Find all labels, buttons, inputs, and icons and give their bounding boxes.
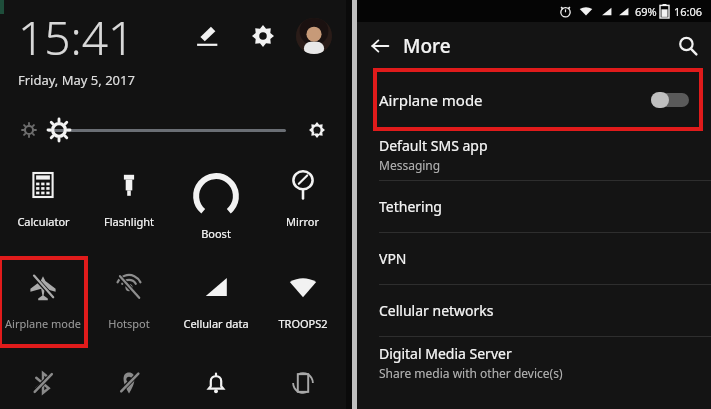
staticText: Airplane mode [379, 90, 483, 110]
button[interactable]: Cellular networks [357, 285, 711, 336]
staticText: More [403, 33, 451, 59]
staticText: Messaging [379, 157, 441, 173]
button[interactable]: Default SMS app [357, 129, 711, 180]
button[interactable]: Digital Media Server [357, 337, 711, 388]
staticText: Flashlight [104, 214, 154, 229]
staticText: Cellular networks [379, 301, 494, 320]
staticText: Share media with other device(s) [379, 365, 563, 381]
staticText: TROOPS2 [278, 316, 328, 331]
button[interactable]: Auto brightness [302, 115, 332, 145]
staticText: Airplane mode [5, 316, 81, 331]
staticText: 15:41 [18, 6, 135, 69]
staticText: Boost [201, 226, 231, 241]
staticText: Hotspot [108, 316, 150, 331]
staticText: 16:06 [674, 4, 703, 19]
staticText: Mirror [286, 214, 319, 229]
button[interactable]: Edit [190, 19, 224, 53]
staticText: Default SMS app [379, 136, 488, 155]
staticText: Cellular data [183, 316, 249, 331]
button[interactable]: Search [665, 23, 711, 69]
button[interactable]: Cellular data [172, 258, 259, 337]
staticText: A [314, 125, 320, 136]
button[interactable]: Calculator [0, 156, 86, 235]
button[interactable]: Boost [172, 156, 259, 247]
staticText: Digital Media Server [379, 344, 512, 363]
button[interactable]: Notifications [172, 358, 259, 408]
button[interactable]: Flashlight [86, 156, 172, 235]
button[interactable]: Bluetooth off [0, 358, 86, 408]
staticText: VPN [379, 249, 407, 268]
button[interactable]: VPN [357, 233, 711, 284]
button[interactable]: Auto rotate [259, 358, 346, 408]
button[interactable]: Airplane mode [0, 258, 86, 346]
button[interactable]: Mirror [259, 156, 346, 235]
button[interactable]: Hotspot [86, 258, 172, 337]
button[interactable]: Airplane mode [357, 70, 711, 129]
button[interactable]: Location off [86, 358, 172, 408]
staticText: 69% [635, 4, 657, 19]
button[interactable]: TROOPS2 [259, 258, 346, 337]
button[interactable]: Settings [246, 19, 280, 53]
staticText: Friday, May 5, 2017 [18, 71, 135, 89]
button[interactable]: Back [357, 23, 403, 69]
staticText: Tethering [379, 197, 442, 216]
button[interactable]: Tethering [357, 181, 711, 232]
staticText: Calculator [17, 214, 70, 229]
button[interactable]: User profile [296, 18, 332, 54]
